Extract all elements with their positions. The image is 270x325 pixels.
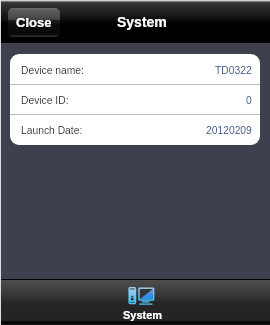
staticText: Launch Date: bbox=[21, 125, 83, 137]
button[interactable]: Device ID: bbox=[10, 85, 260, 115]
button[interactable]: Device name: bbox=[10, 54, 260, 85]
button[interactable]: Launch Date: bbox=[10, 115, 260, 145]
staticText: Close bbox=[16, 15, 52, 30]
staticText: Device ID: bbox=[21, 95, 69, 107]
staticText: System bbox=[117, 14, 167, 30]
button[interactable]: Close bbox=[8, 8, 60, 37]
staticText: 20120209 bbox=[206, 125, 252, 137]
staticText: 0 bbox=[246, 95, 252, 107]
staticText: TD0322 bbox=[215, 65, 252, 77]
staticText: System bbox=[123, 309, 163, 321]
staticText: Device name: bbox=[21, 65, 84, 77]
button[interactable]: System bbox=[106, 280, 176, 325]
other: System bbox=[128, 286, 155, 305]
